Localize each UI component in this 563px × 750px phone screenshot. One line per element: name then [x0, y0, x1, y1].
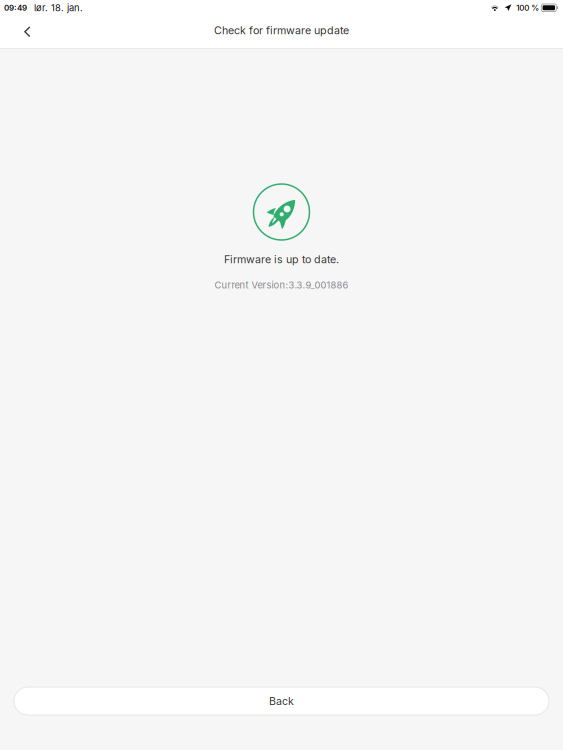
- staticText: Firmware is up to date.: [224, 253, 339, 266]
- staticText: Back: [269, 695, 294, 707]
- button[interactable]: Back: [14, 687, 549, 715]
- staticText: Current Version:3.3.9_001886: [214, 280, 348, 291]
- staticText: Check for firmware update: [214, 24, 349, 37]
- staticText: lør. 18. jan.: [34, 2, 83, 13]
- button[interactable]: Back: [0, 19, 49, 44]
- staticText: 09:49: [4, 3, 27, 12]
- staticText: 100 %: [516, 3, 539, 12]
